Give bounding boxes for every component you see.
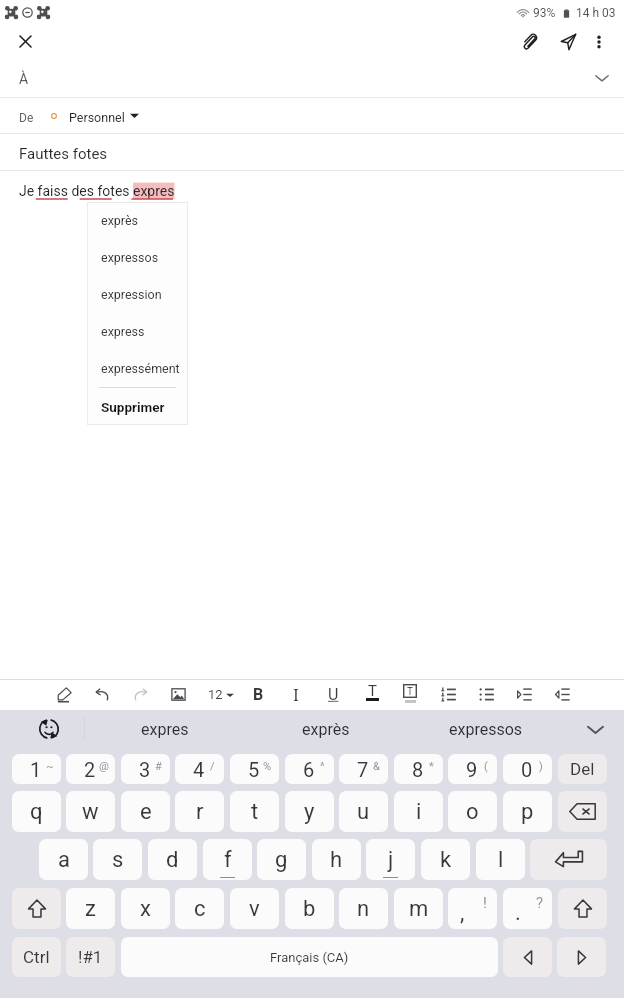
button[interactable]: More options <box>583 26 615 58</box>
staticText: 2 <box>84 758 96 781</box>
button[interactable]: e <box>121 791 170 832</box>
button[interactable]: 3 <box>121 754 170 784</box>
staticText: U <box>328 685 339 704</box>
button[interactable]: Undo <box>86 679 118 710</box>
button[interactable]: Ctrl <box>12 937 61 977</box>
staticText: f <box>224 847 232 873</box>
button[interactable]: r <box>175 791 224 832</box>
button[interactable]: z <box>66 888 115 929</box>
staticText: 0 <box>521 758 533 781</box>
button[interactable]: 7 <box>339 754 388 784</box>
staticText: 9 <box>466 758 478 781</box>
button[interactable]: Increase indent <box>508 679 540 710</box>
button[interactable]: expressément <box>87 350 188 387</box>
button[interactable]: , <box>448 888 497 929</box>
staticText: expressément <box>101 361 180 376</box>
button[interactable]: shift <box>558 888 607 929</box>
button[interactable]: De <box>0 98 624 133</box>
button[interactable]: Emoji <box>30 710 68 748</box>
button[interactable]: x <box>121 888 170 929</box>
button[interactable]: j <box>366 839 415 880</box>
button[interactable]: 4 <box>175 754 224 784</box>
button[interactable]: k <box>421 839 470 880</box>
button[interactable]: Decrease indent <box>546 679 578 710</box>
button[interactable]: s <box>93 839 142 880</box>
button[interactable]: À <box>0 58 624 97</box>
staticText: expressos <box>101 250 159 265</box>
button[interactable]: 2 <box>66 754 115 784</box>
button[interactable]: . <box>503 888 552 929</box>
button[interactable]: left <box>503 937 552 977</box>
button[interactable]: c <box>175 888 224 929</box>
button[interactable]: m <box>394 888 443 929</box>
button[interactable]: l <box>476 839 525 880</box>
button[interactable]: Underline <box>317 679 349 710</box>
button[interactable]: 0 <box>503 754 552 784</box>
button[interactable]: Text colour <box>356 679 388 710</box>
button[interactable]: 8 <box>394 754 443 784</box>
button[interactable]: backspace <box>558 791 607 832</box>
staticText: % <box>263 760 272 773</box>
button[interactable]: u <box>339 791 388 832</box>
staticText: v <box>249 896 260 922</box>
button[interactable]: t <box>230 791 279 832</box>
button[interactable]: exprès <box>87 202 188 239</box>
staticText: 7 <box>357 758 369 781</box>
button[interactable]: expressos <box>426 710 546 748</box>
button[interactable]: 1 <box>12 754 61 784</box>
button[interactable]: h <box>312 839 361 880</box>
button[interactable]: 9 <box>448 754 497 784</box>
button[interactable]: shift <box>12 888 61 929</box>
button[interactable]: p <box>503 791 552 832</box>
button[interactable]: right <box>557 937 606 977</box>
button[interactable]: v <box>230 888 279 929</box>
button[interactable]: 5 <box>230 754 279 784</box>
button[interactable]: f <box>203 839 252 880</box>
button[interactable]: y <box>285 791 334 832</box>
button[interactable]: b <box>285 888 334 929</box>
button[interactable]: n <box>339 888 388 929</box>
button[interactable]: Text size <box>202 679 240 710</box>
button[interactable]: g <box>257 839 306 880</box>
button[interactable]: Français (CA) <box>121 937 498 977</box>
button[interactable]: enter <box>530 839 607 880</box>
button[interactable]: Bold <box>242 679 274 710</box>
button[interactable]: Expand recipients <box>587 63 617 93</box>
button[interactable]: Supprimer <box>87 388 188 425</box>
button[interactable]: expres <box>105 710 225 748</box>
button[interactable]: Bulleted list <box>470 679 502 710</box>
button[interactable]: Redo <box>124 679 156 710</box>
button[interactable]: Collapse keyboard <box>578 712 612 746</box>
button[interactable]: a <box>39 839 88 880</box>
button[interactable]: Numbered list <box>432 679 464 710</box>
staticText: s <box>112 847 124 873</box>
button[interactable]: i <box>394 791 443 832</box>
button[interactable]: express <box>87 313 188 350</box>
staticText: exprès <box>302 720 350 739</box>
button[interactable]: Italic <box>280 679 312 710</box>
button[interactable]: Close <box>6 25 44 58</box>
button[interactable]: exprès <box>266 710 386 748</box>
staticText: g <box>275 847 288 873</box>
staticText: l <box>498 847 504 873</box>
button[interactable]: expression <box>87 276 188 313</box>
button[interactable]: !#1 <box>66 937 115 977</box>
staticText: n <box>357 896 370 922</box>
button[interactable]: Fauttes fotes <box>0 134 624 170</box>
button[interactable]: Highlight colour <box>394 679 426 710</box>
button[interactable]: Attach file <box>513 25 549 58</box>
staticText: expressos <box>449 720 523 739</box>
button[interactable]: expressos <box>87 239 188 276</box>
button[interactable]: Insert image <box>162 679 194 710</box>
button[interactable]: d <box>148 839 197 880</box>
button[interactable]: Del <box>558 754 607 784</box>
staticText: À <box>19 71 29 87</box>
staticText: I <box>293 684 299 706</box>
button[interactable]: 6 <box>285 754 334 784</box>
button[interactable]: Send <box>550 25 586 58</box>
staticText: B <box>253 685 264 704</box>
button[interactable]: o <box>448 791 497 832</box>
button[interactable]: q <box>12 791 61 832</box>
button[interactable]: Highlight <box>48 679 80 710</box>
button[interactable]: w <box>66 791 115 832</box>
